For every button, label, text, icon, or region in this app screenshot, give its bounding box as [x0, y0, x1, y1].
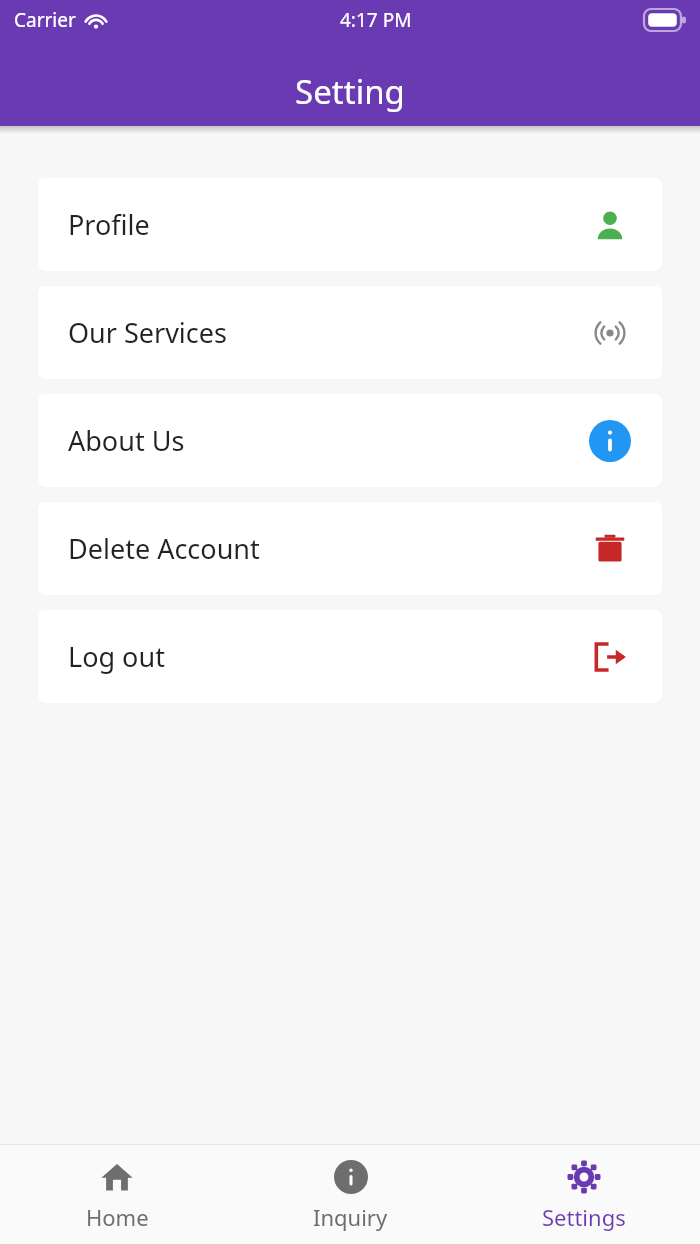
- button[interactable]: Inquiry: [234, 1145, 467, 1244]
- staticText: Setting: [295, 69, 405, 114]
- staticText: Carrier: [14, 7, 76, 33]
- staticText: Delete Account: [68, 530, 260, 567]
- button[interactable]: Settings: [467, 1145, 700, 1244]
- staticText: Profile: [68, 206, 150, 243]
- staticText: Inquiry: [313, 1202, 388, 1232]
- staticText: About Us: [68, 422, 185, 459]
- button[interactable]: Home: [0, 1145, 234, 1244]
- staticText: 4:17 PM: [340, 7, 412, 33]
- button[interactable]: Delete Account: [38, 502, 662, 595]
- button[interactable]: About Us: [38, 394, 662, 487]
- staticText: Settings: [542, 1202, 626, 1232]
- staticText: Our Services: [68, 314, 227, 351]
- staticText: Home: [86, 1202, 149, 1232]
- button[interactable]: Our Services: [38, 286, 662, 379]
- staticText: Log out: [68, 638, 165, 675]
- button[interactable]: Profile: [38, 178, 662, 271]
- button[interactable]: Log out: [38, 610, 662, 703]
